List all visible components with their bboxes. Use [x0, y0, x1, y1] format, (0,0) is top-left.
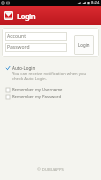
button[interactable]: Remember my Username [6, 87, 101, 93]
button[interactable]: Auto-Login [6, 65, 36, 71]
staticText: 8:24 [91, 0, 100, 6]
staticText: You can receive notification when you ch… [12, 71, 87, 81]
button[interactable]: Remember my Password [6, 94, 101, 100]
staticText: Auto-Login [12, 65, 36, 71]
staticText: Login [17, 11, 36, 21]
staticText: Remember my Password [12, 94, 61, 100]
staticText: Login [78, 42, 90, 48]
staticText: © DUBUAPPS [37, 167, 64, 173]
button[interactable]: Login [74, 35, 94, 55]
other: Mail [4, 11, 13, 20]
button[interactable]: Account [5, 32, 67, 41]
staticText: Remember my Username [12, 87, 63, 93]
staticText: Account [7, 33, 27, 40]
staticText: Password [7, 44, 30, 51]
button[interactable]: Password [5, 43, 67, 52]
